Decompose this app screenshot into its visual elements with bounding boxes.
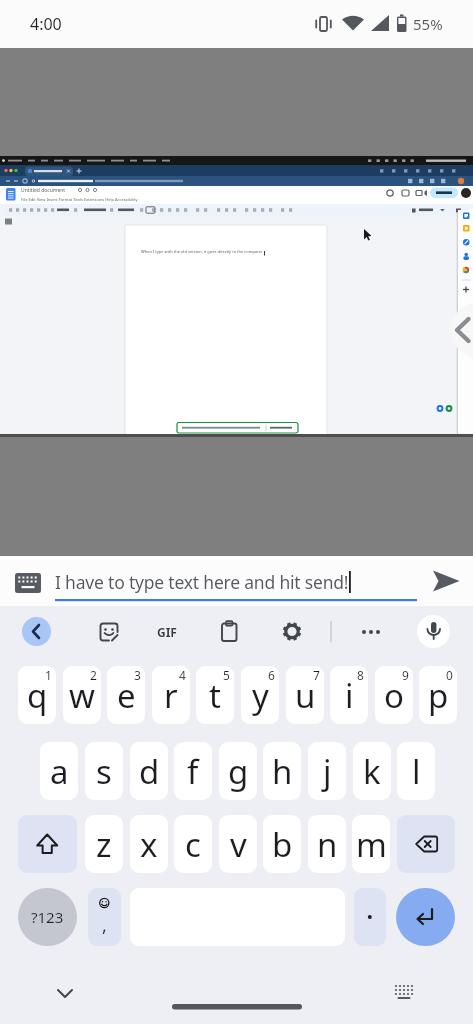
- button[interactable]: x: [130, 815, 168, 873]
- staticText: y: [252, 673, 269, 718]
- button[interactable]: p: [419, 666, 457, 724]
- button[interactable]: n: [308, 815, 346, 873]
- button[interactable]: [356, 624, 386, 640]
- button[interactable]: g: [219, 742, 257, 800]
- staticText: Untitled document: [21, 187, 66, 194]
- staticText: 7: [313, 667, 320, 683]
- button[interactable]: [22, 617, 51, 646]
- staticText: m: [356, 822, 387, 867]
- staticText: 8: [357, 667, 364, 683]
- staticText: n: [317, 822, 338, 867]
- staticText: b: [272, 822, 293, 867]
- button[interactable]: k: [353, 742, 391, 800]
- staticText: a: [50, 749, 69, 794]
- staticText: 4:00: [30, 13, 62, 35]
- staticText: z: [96, 822, 112, 867]
- button[interactable]: [396, 888, 455, 946]
- staticText: i: [345, 673, 354, 718]
- staticText: j: [323, 749, 332, 794]
- button[interactable]: u: [286, 666, 324, 724]
- button[interactable]: ,: [88, 888, 121, 946]
- button[interactable]: z: [85, 815, 123, 873]
- staticText: I have to type text here and hit send!: [55, 570, 349, 594]
- button[interactable]: d: [130, 742, 168, 800]
- button[interactable]: h: [263, 742, 301, 800]
- staticText: ?123: [31, 907, 64, 927]
- button[interactable]: [417, 615, 450, 648]
- button[interactable]: m: [352, 815, 390, 873]
- button[interactable]: ?123: [18, 888, 77, 946]
- button[interactable]: s: [85, 742, 123, 800]
- staticText: File Edit View Insert Format Tools Exten…: [21, 197, 138, 202]
- staticText: v: [230, 822, 247, 867]
- button[interactable]: v: [219, 815, 257, 873]
- staticText: h: [272, 749, 293, 794]
- button[interactable]: y: [241, 666, 279, 724]
- button[interactable]: l: [397, 742, 435, 800]
- button[interactable]: a: [40, 742, 78, 800]
- staticText: 55%: [413, 14, 443, 34]
- button[interactable]: b: [263, 815, 301, 873]
- staticText: u: [295, 673, 316, 718]
- staticText: GIF: [157, 624, 177, 640]
- button[interactable]: o: [375, 666, 413, 724]
- button[interactable]: [354, 888, 386, 946]
- button[interactable]: [451, 303, 473, 358]
- button[interactable]: [428, 566, 464, 596]
- staticText: 6: [268, 667, 275, 683]
- staticText: q: [27, 673, 48, 718]
- staticText: ,: [102, 913, 107, 938]
- staticText: x: [140, 822, 158, 867]
- button[interactable]: j: [308, 742, 346, 800]
- staticText: g: [228, 749, 249, 794]
- staticText: f: [187, 749, 199, 794]
- staticText: c: [185, 822, 201, 867]
- staticText: e: [117, 673, 136, 718]
- button[interactable]: r: [152, 666, 190, 724]
- button[interactable]: [397, 815, 455, 873]
- staticText: 3: [134, 667, 141, 683]
- button[interactable]: [14, 571, 42, 595]
- button[interactable]: [219, 620, 240, 643]
- staticText: 0: [446, 667, 453, 683]
- staticText: s: [96, 749, 112, 794]
- button[interactable]: [281, 620, 303, 643]
- staticText: p: [428, 673, 449, 718]
- staticText: 4: [179, 667, 186, 683]
- button[interactable]: [18, 815, 77, 873]
- staticText: t: [209, 673, 221, 718]
- staticText: 9: [402, 667, 409, 683]
- staticText: d: [139, 749, 160, 794]
- button[interactable]: q: [18, 666, 56, 724]
- staticText: r: [164, 673, 178, 718]
- staticText: 1: [45, 667, 52, 683]
- staticText: When I type with the old version, it goe…: [141, 249, 263, 254]
- staticText: w: [69, 673, 95, 718]
- staticText: l: [412, 749, 421, 794]
- staticText: o: [384, 673, 404, 718]
- button[interactable]: f: [174, 742, 212, 800]
- button[interactable]: w: [63, 666, 101, 724]
- button[interactable]: GIF: [150, 622, 184, 642]
- staticText: 2: [90, 667, 97, 683]
- button[interactable]: t: [196, 666, 234, 724]
- staticText: 5: [223, 667, 230, 683]
- button[interactable]: i: [330, 666, 368, 724]
- staticText: k: [363, 749, 381, 794]
- button[interactable]: [98, 621, 120, 643]
- button[interactable]: c: [174, 815, 212, 873]
- button[interactable]: e: [107, 666, 145, 724]
